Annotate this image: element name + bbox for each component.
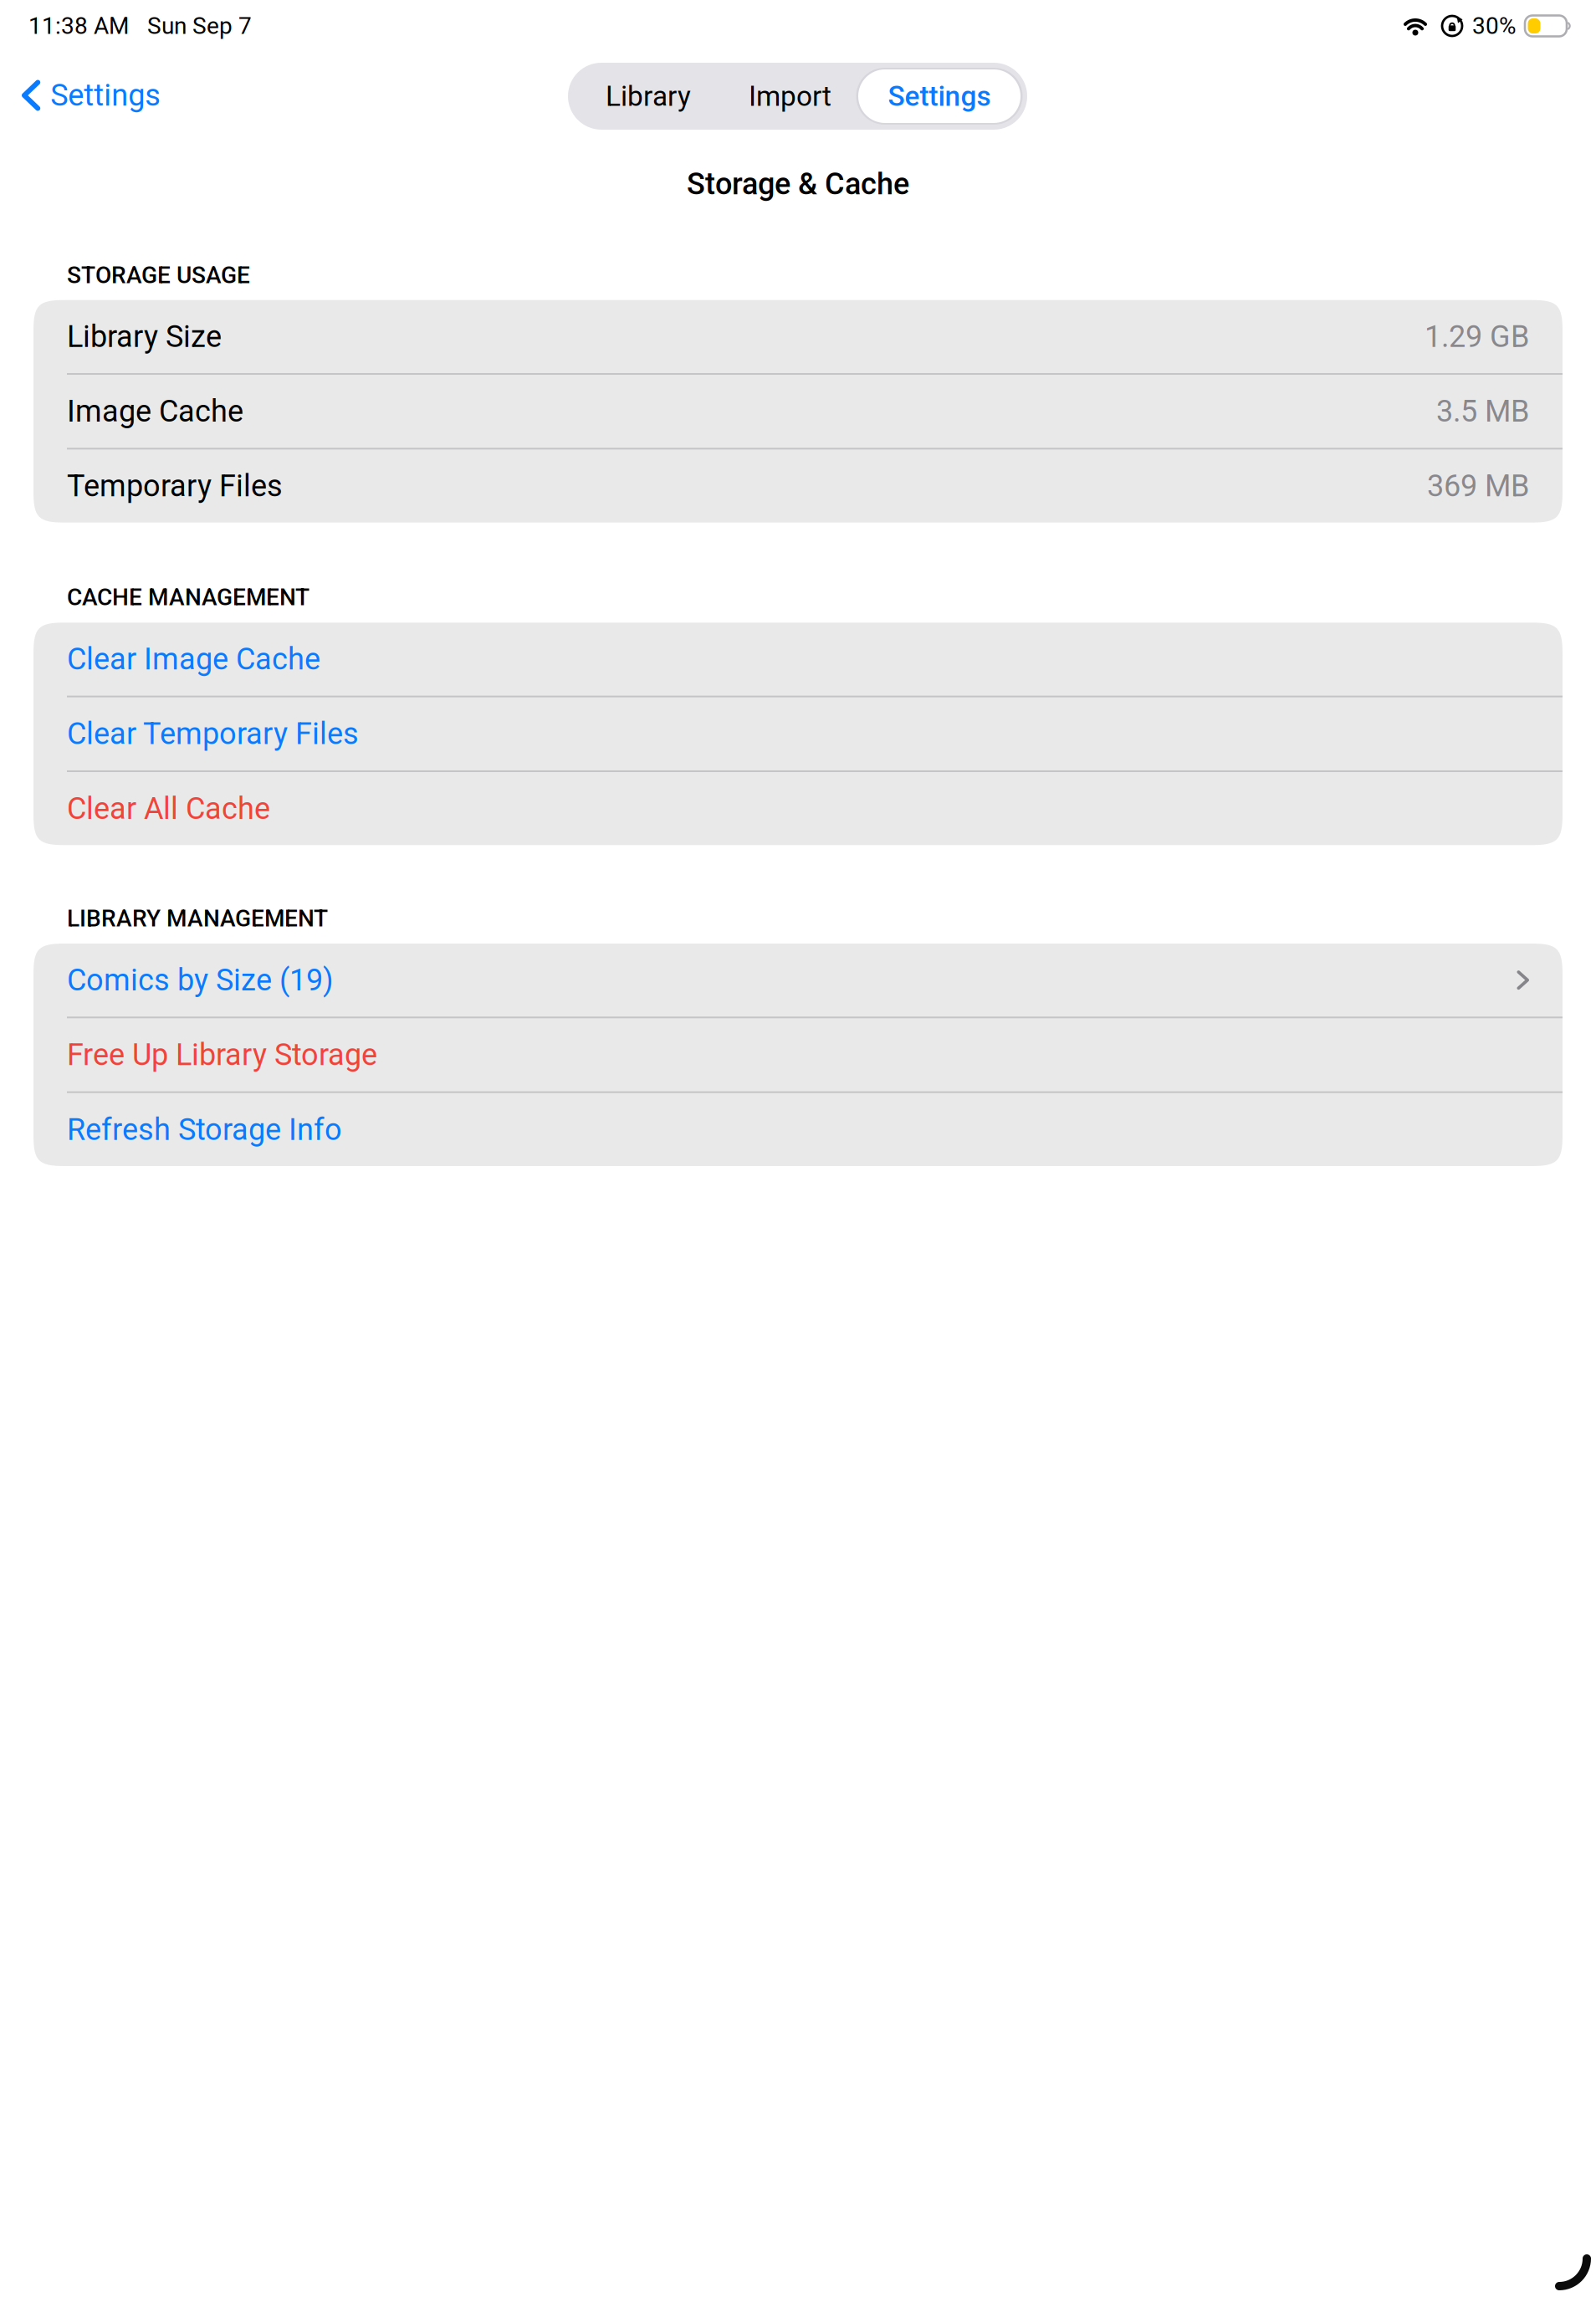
button[interactable]: Settings bbox=[0, 64, 181, 127]
staticText: 30% bbox=[1472, 12, 1517, 40]
staticText: Comics by Size (19) bbox=[67, 962, 334, 998]
staticText: 11:38 AM bbox=[28, 12, 129, 40]
staticText: Sun Sep 7 bbox=[147, 12, 252, 40]
staticText: Clear Image Cache bbox=[67, 642, 320, 677]
button[interactable]: Import bbox=[722, 69, 858, 123]
staticText: Storage & Cache bbox=[687, 166, 909, 202]
staticText: Free Up Library Storage bbox=[67, 1037, 377, 1072]
button[interactable]: Comics by Size (19) bbox=[33, 944, 1563, 1017]
staticText: Refresh Storage Info bbox=[67, 1112, 342, 1147]
staticText: Library Size bbox=[67, 319, 222, 354]
staticText: Library bbox=[606, 80, 691, 113]
button[interactable]: Settings bbox=[858, 69, 1021, 123]
staticText: STORAGE USAGE bbox=[67, 261, 250, 289]
button[interactable]: Clear Image Cache bbox=[33, 623, 1563, 696]
button[interactable]: Free Up Library Storage bbox=[33, 1018, 1563, 1091]
button[interactable]: Clear All Cache bbox=[33, 772, 1563, 845]
button[interactable]: Library bbox=[575, 69, 722, 123]
staticText: Image Cache bbox=[67, 394, 243, 429]
staticText: CACHE MANAGEMENT bbox=[67, 584, 309, 611]
staticText: Clear Temporary Files bbox=[67, 716, 359, 752]
staticText: 3.5 MB bbox=[1436, 394, 1529, 429]
staticText: Temporary Files bbox=[67, 468, 283, 504]
staticText: Settings bbox=[50, 78, 161, 113]
button[interactable]: Refresh Storage Info bbox=[33, 1093, 1563, 1166]
staticText: 369 MB bbox=[1427, 468, 1529, 504]
staticText: Settings bbox=[888, 80, 991, 113]
staticText: LIBRARY MANAGEMENT bbox=[67, 905, 328, 932]
button[interactable]: Clear Temporary Files bbox=[33, 697, 1563, 770]
staticText: Import bbox=[749, 80, 831, 113]
staticText: 1.29 GB bbox=[1425, 319, 1529, 354]
staticText: Clear All Cache bbox=[67, 791, 270, 826]
